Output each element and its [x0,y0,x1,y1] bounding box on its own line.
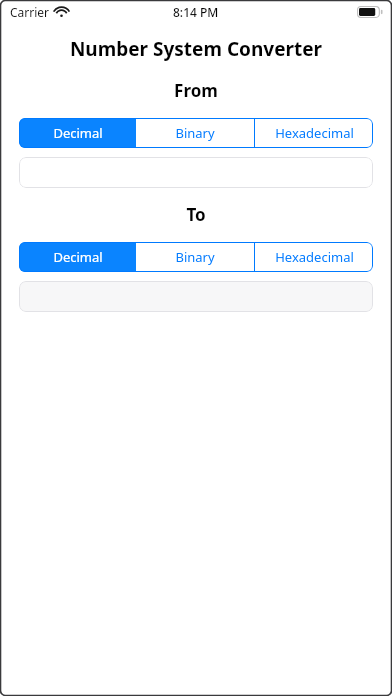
staticText: To [0,203,392,226]
staticText: From [0,79,392,102]
button[interactable]: Binary [136,242,254,272]
staticText: Carrier [10,4,50,20]
staticText: Decimal [53,248,103,266]
button[interactable]: Enter value [19,157,373,188]
staticText: Binary [175,248,215,266]
button[interactable]: Decimal [19,242,136,272]
button[interactable]: Hexadecimal [255,118,373,148]
staticText: 8:14 PM [173,4,219,20]
staticText: Number System Converter [0,36,392,62]
button[interactable]: Result value [19,281,373,312]
button[interactable]: Binary [136,118,254,148]
other: Battery [357,6,383,18]
staticText: Binary [175,124,215,142]
other: Wi-Fi [55,7,68,17]
staticText: Decimal [53,124,103,142]
button[interactable]: Decimal [19,118,136,148]
staticText: Hexadecimal [275,124,354,142]
button[interactable]: Hexadecimal [255,242,373,272]
staticText: Hexadecimal [275,248,354,266]
